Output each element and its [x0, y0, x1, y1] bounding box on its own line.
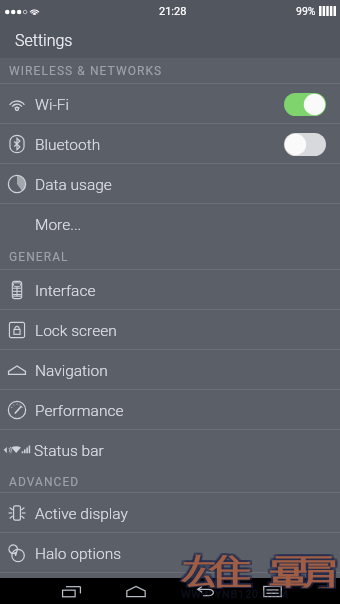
staticText: 雄霸	[182, 543, 340, 588]
staticText: Interface	[35, 282, 96, 300]
staticText: 21:28	[159, 5, 187, 18]
staticText: Status bar	[34, 442, 104, 460]
staticText: Settings	[15, 31, 73, 50]
button[interactable]: Wi-Fi	[0, 84, 340, 124]
staticText: 雄霸	[182, 544, 340, 589]
button[interactable]: Bluetooth	[0, 124, 340, 164]
staticText: Lock screen	[35, 322, 117, 340]
button[interactable]: Data usage	[0, 164, 340, 204]
staticText: GENERAL	[9, 250, 69, 264]
button[interactable]: Interface	[0, 270, 340, 310]
button[interactable]: Status bar	[0, 430, 340, 470]
button[interactable]: Home	[114, 578, 158, 604]
staticText: Navigation	[35, 362, 108, 380]
staticText: 雄霸	[178, 542, 340, 587]
staticText: Bluetooth	[35, 136, 101, 154]
staticText: 雄霸	[180, 542, 340, 587]
button[interactable]: Recent apps	[49, 578, 93, 604]
button[interactable]: Halo options	[0, 533, 340, 573]
staticText: WIRELESS & NETWORKS	[9, 64, 163, 78]
button[interactable]: Lock screen	[0, 310, 340, 350]
staticText: Halo options	[35, 545, 122, 563]
staticText: 雄霸	[180, 544, 340, 589]
staticText: 雄霸	[182, 542, 340, 587]
staticText: 99%	[296, 5, 316, 17]
staticText: 雄霸	[178, 543, 340, 588]
staticText: Data usage	[35, 176, 112, 194]
staticText: 雄霸	[180, 543, 340, 588]
button[interactable]: Back	[184, 578, 228, 604]
button[interactable]: More...	[0, 204, 340, 244]
staticText: Wi-Fi	[35, 96, 70, 114]
staticText: WWW.YNB120.COM	[181, 588, 289, 601]
button[interactable]: Menu	[250, 578, 294, 604]
button[interactable]: Performance	[0, 390, 340, 430]
staticText: 雄霸	[178, 544, 340, 589]
staticText: ADVANCED	[9, 475, 80, 489]
staticText: Performance	[35, 402, 124, 420]
button[interactable]: Active display	[0, 493, 340, 533]
staticText: Active display	[35, 505, 128, 523]
button[interactable]: Navigation	[0, 350, 340, 390]
staticText: More...	[35, 216, 82, 234]
